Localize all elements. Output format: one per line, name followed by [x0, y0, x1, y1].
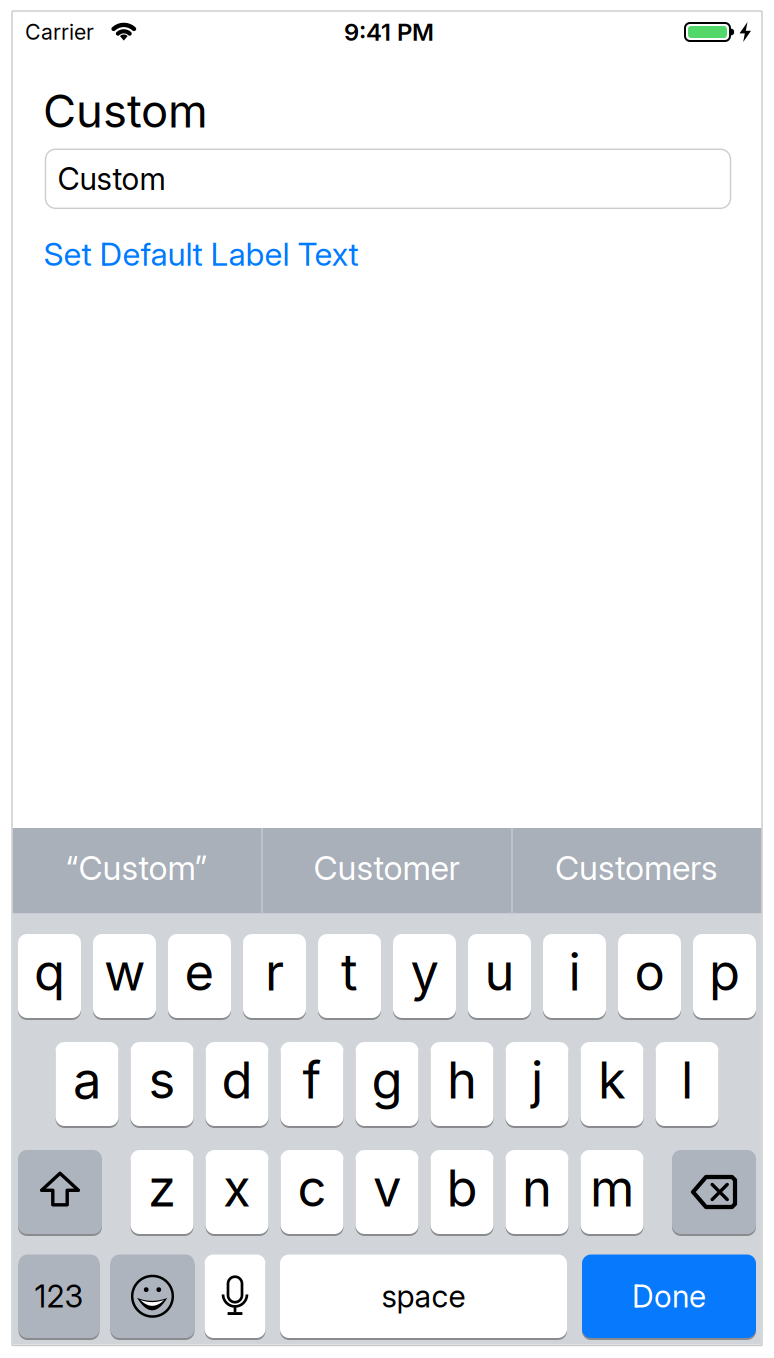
- button[interactable]: Delete: [672, 1149, 756, 1235]
- button[interactable]: e: [168, 933, 231, 1019]
- button[interactable]: p: [693, 933, 756, 1019]
- button[interactable]: s: [130, 1041, 193, 1127]
- staticText: h: [447, 1050, 477, 1110]
- staticText: Custom: [57, 161, 165, 197]
- staticText: d: [221, 1050, 252, 1110]
- button[interactable]: space: [280, 1253, 567, 1339]
- button[interactable]: z: [130, 1149, 193, 1235]
- staticText: t: [341, 942, 358, 1002]
- staticText: g: [371, 1050, 402, 1110]
- staticText: 123: [34, 1278, 83, 1314]
- button[interactable]: autocorrect Custom: [14, 828, 259, 913]
- button[interactable]: o: [618, 933, 681, 1019]
- button[interactable]: g: [355, 1041, 418, 1127]
- button[interactable]: n: [505, 1149, 568, 1235]
- staticText: e: [184, 942, 214, 1002]
- button[interactable]: l: [655, 1041, 718, 1127]
- staticText: w: [104, 942, 145, 1002]
- button[interactable]: Custom text field: [45, 149, 730, 208]
- button[interactable]: t: [318, 933, 381, 1019]
- staticText: s: [148, 1050, 175, 1110]
- staticText: n: [522, 1158, 552, 1218]
- button[interactable]: Set Default Label Text: [0, 0, 774, 1358]
- staticText: r: [265, 942, 284, 1002]
- staticText: Carrier: [25, 19, 94, 45]
- staticText: l: [681, 1050, 693, 1110]
- button[interactable]: r: [243, 933, 306, 1019]
- button[interactable]: a: [55, 1041, 118, 1127]
- staticText: i: [568, 942, 580, 1002]
- button[interactable]: j: [505, 1041, 568, 1127]
- button[interactable]: f: [280, 1041, 343, 1127]
- button[interactable]: v: [355, 1149, 418, 1235]
- staticText: u: [484, 942, 514, 1002]
- button[interactable]: suggestion Customers: [514, 828, 759, 913]
- staticText: space: [381, 1278, 465, 1314]
- staticText: Customer: [313, 848, 459, 887]
- button[interactable]: Shift: [18, 1149, 102, 1235]
- staticText: “Custom”: [65, 848, 207, 887]
- staticText: y: [410, 942, 438, 1002]
- staticText: f: [302, 1050, 321, 1110]
- button[interactable]: h: [430, 1041, 493, 1127]
- button[interactable]: q: [18, 933, 81, 1019]
- staticText: k: [598, 1050, 626, 1110]
- button[interactable]: c: [280, 1149, 343, 1235]
- staticText: x: [223, 1158, 251, 1218]
- staticText: 9:41 PM: [344, 18, 434, 46]
- button[interactable]: Emoji: [110, 1253, 194, 1339]
- staticText: Set Default Label Text: [43, 235, 358, 273]
- button[interactable]: i: [543, 933, 606, 1019]
- staticText: Custom: [43, 84, 208, 138]
- staticText: o: [634, 942, 664, 1002]
- button[interactable]: suggestion Customer: [264, 828, 509, 913]
- button[interactable]: d: [205, 1041, 268, 1127]
- button[interactable]: Dictation: [204, 1253, 265, 1339]
- staticText: q: [34, 942, 65, 1002]
- staticText: c: [297, 1158, 326, 1218]
- button[interactable]: w: [93, 933, 156, 1019]
- button[interactable]: m: [580, 1149, 643, 1235]
- button[interactable]: Done: [582, 1253, 756, 1339]
- staticText: z: [148, 1158, 176, 1218]
- button[interactable]: y: [393, 933, 456, 1019]
- button[interactable]: x: [205, 1149, 268, 1235]
- staticText: a: [73, 1050, 101, 1110]
- staticText: j: [531, 1050, 543, 1110]
- button[interactable]: Numbers: [18, 1253, 99, 1339]
- staticText: Customers: [555, 848, 718, 887]
- button[interactable]: u: [468, 933, 531, 1019]
- staticText: p: [709, 942, 740, 1002]
- button[interactable]: b: [430, 1149, 493, 1235]
- button[interactable]: k: [580, 1041, 643, 1127]
- staticText: m: [590, 1158, 634, 1218]
- staticText: b: [446, 1158, 477, 1218]
- staticText: Done: [632, 1278, 706, 1314]
- staticText: v: [373, 1158, 401, 1218]
